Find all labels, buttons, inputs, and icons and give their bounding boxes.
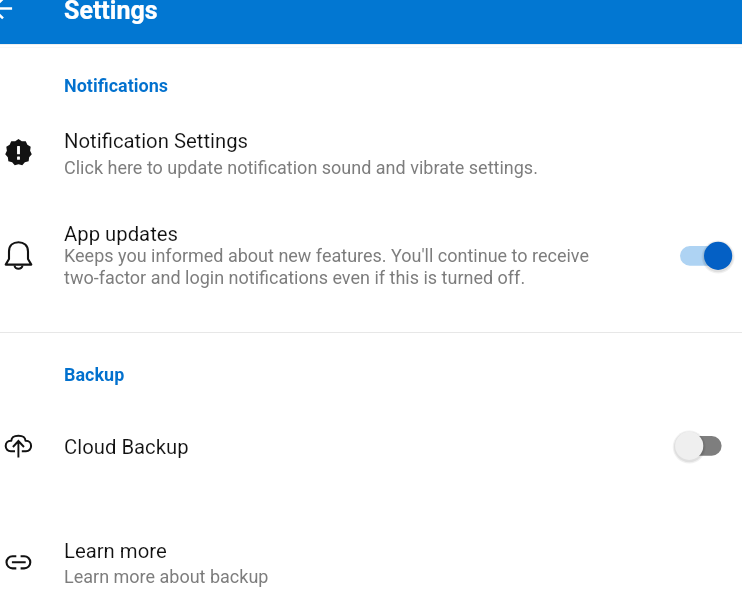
staticText: App updates bbox=[64, 222, 179, 246]
button[interactable]: Learn more bbox=[0, 534, 742, 594]
button[interactable]: Toggle, on bbox=[668, 232, 736, 280]
staticText: Cloud Backup bbox=[64, 435, 189, 459]
staticText: Learn more bbox=[64, 539, 167, 563]
button[interactable]: Cloud Backup bbox=[0, 422, 742, 474]
button[interactable]: App updates bbox=[0, 212, 742, 304]
button[interactable]: Notification Settings bbox=[0, 120, 742, 194]
staticText: Learn more about backup bbox=[64, 566, 269, 587]
staticText: Notification Settings bbox=[64, 129, 249, 153]
button[interactable]: Toggle, off bbox=[668, 422, 736, 470]
staticText: Click here to update notification sound … bbox=[64, 157, 538, 178]
staticText: two-factor and login notifications even … bbox=[64, 267, 526, 288]
button[interactable]: Navigate up bbox=[0, 0, 8, 31]
staticText: Notifications bbox=[64, 75, 169, 96]
staticText: Keeps you informed about new features. Y… bbox=[64, 245, 590, 266]
staticText: Settings bbox=[64, 0, 158, 25]
staticText: Backup bbox=[64, 364, 125, 385]
